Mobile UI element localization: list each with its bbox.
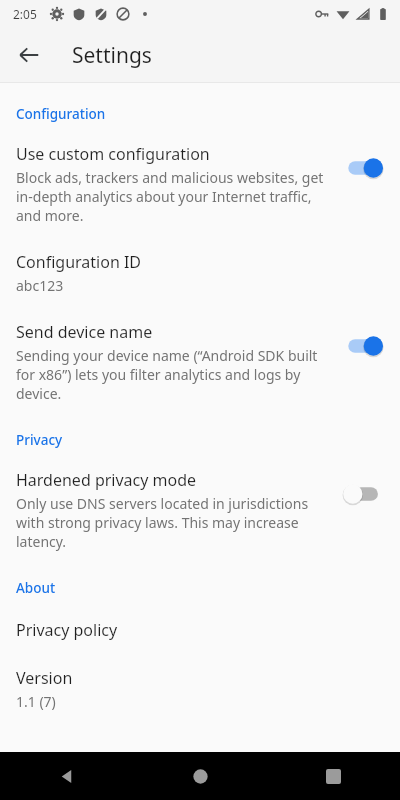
staticText: Use custom configuration xyxy=(16,143,210,165)
button[interactable]: Back xyxy=(0,752,134,800)
staticText: 1.1 (7) xyxy=(16,692,56,711)
button[interactable]: Back xyxy=(8,34,50,76)
staticText: Privacy xyxy=(16,431,63,449)
staticText: Block ads, trackers and malicious websit… xyxy=(16,168,336,225)
staticText: Settings xyxy=(72,41,152,70)
button[interactable]: Use custom configuration xyxy=(0,143,400,225)
button[interactable]: Hardened privacy mode xyxy=(0,469,400,551)
button[interactable]: Version xyxy=(0,667,400,711)
staticText: Hardened privacy mode xyxy=(16,469,197,491)
staticText: Configuration xyxy=(16,105,106,123)
button[interactable]: Recent apps xyxy=(267,752,400,800)
button[interactable]: Home xyxy=(134,752,267,800)
button[interactable]: Toggle on xyxy=(346,335,384,357)
staticText: Send device name xyxy=(16,321,153,343)
staticText: Configuration ID xyxy=(16,251,142,273)
staticText: Version xyxy=(16,667,73,689)
button[interactable]: Send device name xyxy=(0,321,400,403)
staticText: Privacy policy xyxy=(16,619,118,641)
staticText: About xyxy=(16,579,56,597)
staticText: Only use DNS servers located in jurisdic… xyxy=(16,494,336,551)
button[interactable]: Toggle off xyxy=(346,483,384,505)
button[interactable]: Configuration ID xyxy=(0,251,400,295)
button[interactable]: Toggle on xyxy=(346,157,384,179)
staticText: Sending your device name (“Android SDK b… xyxy=(16,346,336,403)
button[interactable]: Privacy policy xyxy=(0,619,400,641)
staticText: 2:05 xyxy=(13,6,37,22)
staticText: abc123 xyxy=(16,276,64,295)
